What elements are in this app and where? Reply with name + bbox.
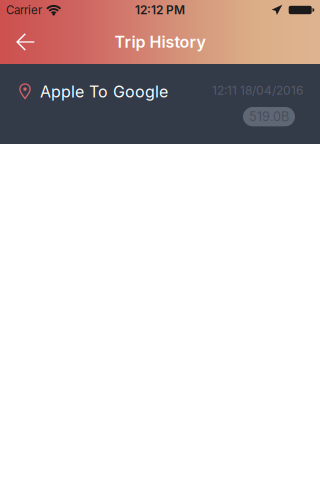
staticText: 12:12 PM — [135, 3, 185, 17]
staticText: Trip History — [114, 32, 205, 52]
staticText: Apple To Google — [40, 82, 168, 101]
button[interactable]: Apple To Google — [0, 64, 320, 144]
button[interactable]: Back — [0, 20, 49, 64]
staticText: 519.0B — [249, 109, 289, 124]
staticText: 12:11 18/04/2016 — [212, 83, 303, 97]
staticText: Carrier — [6, 3, 42, 17]
